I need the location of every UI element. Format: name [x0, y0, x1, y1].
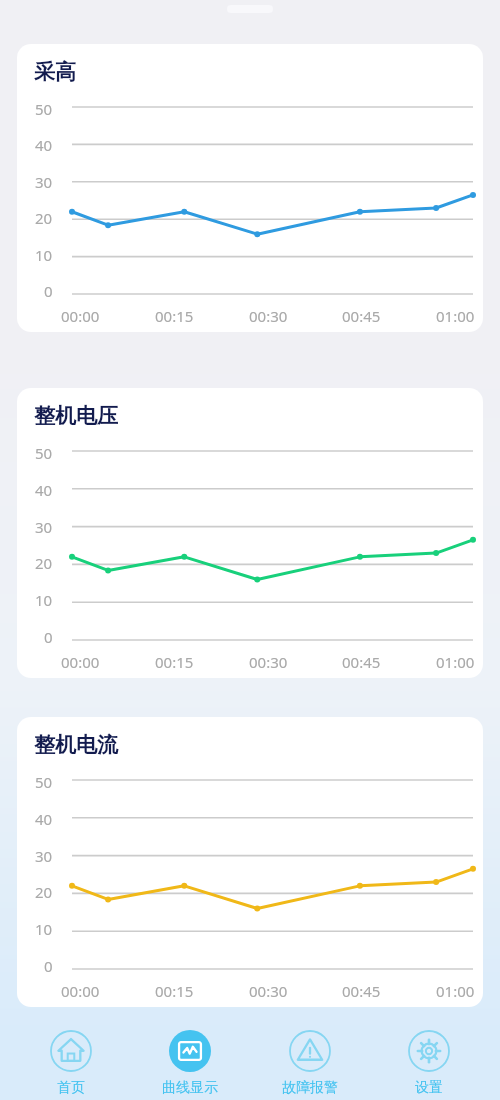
- staticText: 设置: [415, 1079, 443, 1097]
- staticText: 00:45: [342, 981, 381, 1001]
- staticText: 曲线显示: [162, 1079, 218, 1097]
- staticText: 10: [35, 919, 53, 939]
- staticText: 01:00: [436, 652, 475, 672]
- staticText: 00:00: [61, 306, 100, 326]
- staticText: 00:00: [61, 981, 100, 1001]
- staticText: 整机电流: [34, 732, 118, 758]
- staticText: 00:30: [249, 981, 288, 1001]
- staticText: 采高: [34, 59, 76, 85]
- staticText: 30: [35, 172, 53, 192]
- staticText: 01:00: [436, 306, 475, 326]
- staticText: 首页: [57, 1079, 85, 1097]
- staticText: 故障报警: [282, 1079, 338, 1097]
- staticText: 0: [44, 281, 53, 301]
- button[interactable]: 采高: [17, 44, 483, 332]
- staticText: 0: [44, 627, 53, 647]
- staticText: 20: [35, 553, 53, 573]
- staticText: 50: [35, 99, 53, 119]
- button[interactable]: Fault alarm: [262, 1024, 358, 1097]
- staticText: 50: [35, 443, 53, 463]
- staticText: 00:15: [155, 981, 194, 1001]
- staticText: 40: [35, 480, 53, 500]
- staticText: 00:15: [155, 652, 194, 672]
- staticText: 01:00: [436, 981, 475, 1001]
- staticText: 10: [35, 245, 53, 265]
- staticText: 00:45: [342, 306, 381, 326]
- button[interactable]: Home: [23, 1024, 119, 1097]
- staticText: 20: [35, 208, 53, 228]
- staticText: 00:30: [249, 652, 288, 672]
- button[interactable]: Settings: [381, 1024, 477, 1097]
- staticText: 0: [44, 956, 53, 976]
- button[interactable]: 整机电压: [17, 388, 483, 678]
- button[interactable]: Curve display: [142, 1024, 238, 1097]
- staticText: 00:30: [249, 306, 288, 326]
- staticText: 20: [35, 882, 53, 902]
- staticText: 00:00: [61, 652, 100, 672]
- staticText: 00:15: [155, 306, 194, 326]
- staticText: 00:45: [342, 652, 381, 672]
- staticText: 30: [35, 846, 53, 866]
- staticText: 30: [35, 517, 53, 537]
- staticText: 40: [35, 809, 53, 829]
- staticText: 整机电压: [34, 403, 118, 429]
- staticText: 50: [35, 772, 53, 792]
- staticText: 40: [35, 135, 53, 155]
- button[interactable]: 整机电流: [17, 717, 483, 1007]
- staticText: 10: [35, 590, 53, 610]
